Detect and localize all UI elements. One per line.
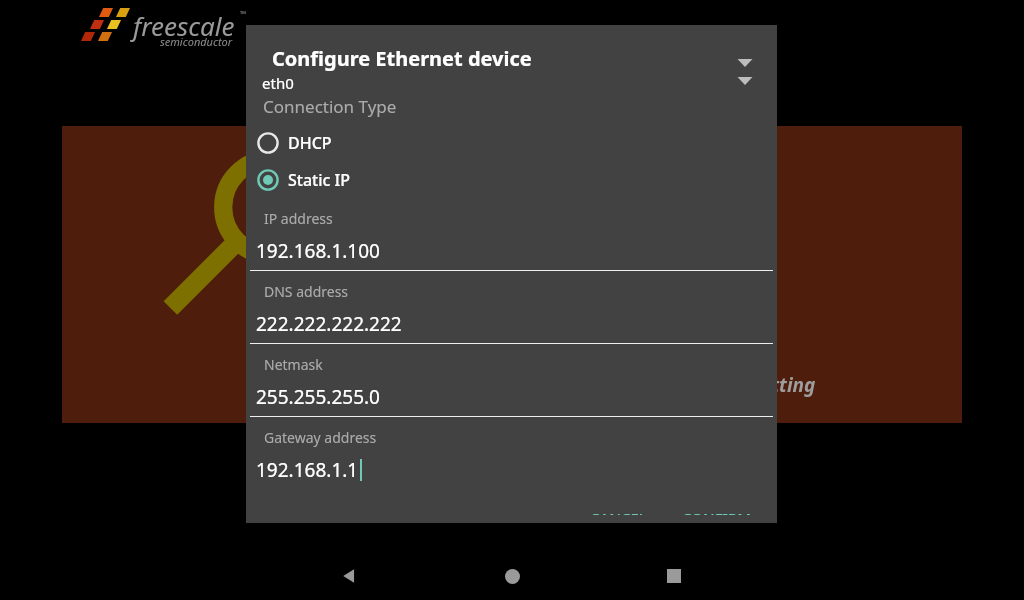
button[interactable]: CANCEL [578,500,659,523]
button[interactable]: Back [325,552,373,600]
staticText: ™ [240,8,247,19]
staticText: Connection Type [263,95,397,118]
button[interactable]: Advanced Setting [512,126,962,423]
button[interactable]: Netmask [246,348,777,421]
staticText: DHCP [288,132,332,154]
staticText: Configure Ethernet device [272,45,532,72]
button[interactable]: Recent apps [650,552,698,600]
staticText: Netmask [264,355,323,374]
staticText: Advanced Setting [659,372,816,398]
button[interactable]: IP address [246,202,777,275]
staticText: Static IP [288,169,350,191]
staticText: semiconductor [160,34,233,49]
staticText: DNS address [264,282,349,301]
button[interactable]: Check [62,126,512,423]
button[interactable]: Gateway address [246,421,777,494]
staticText: freescale [133,8,235,43]
button[interactable]: DNS address [246,275,777,348]
button[interactable]: Static IP [246,165,777,195]
button[interactable]: Select device [727,53,763,93]
staticText: Check [260,372,314,398]
staticText: 255.255.255.0 [256,384,380,410]
staticText: IP address [264,209,333,228]
staticText: eth0 [262,73,294,93]
staticText: 192.168.1.1 [256,457,359,483]
staticText: CONFIRM [682,508,752,515]
button[interactable]: DHCP [246,128,777,158]
button[interactable]: CONFIRM [670,500,764,523]
staticText: 192.168.1.100 [256,238,380,264]
button[interactable]: Home [488,552,536,600]
staticText: Gateway address [264,428,377,447]
staticText: CANCEL [590,508,647,515]
staticText: 222.222.222.222 [256,311,402,337]
